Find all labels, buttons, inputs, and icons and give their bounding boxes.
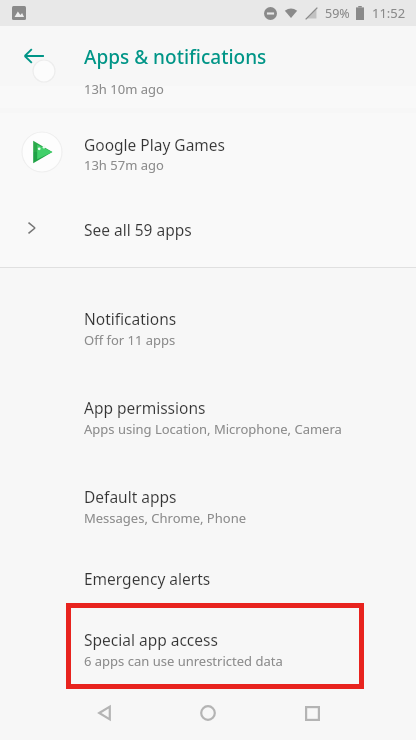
staticText: Special app access bbox=[84, 629, 218, 650]
button[interactable]: See all 59 apps bbox=[0, 189, 416, 267]
button[interactable]: Home bbox=[185, 690, 231, 736]
staticText: Notifications bbox=[84, 308, 177, 329]
staticText: Default apps bbox=[84, 486, 177, 507]
button[interactable]: Recent apps bbox=[289, 690, 335, 736]
button[interactable]: App permissions bbox=[0, 381, 416, 459]
button[interactable]: Emergency alerts bbox=[0, 553, 416, 613]
button[interactable]: Back bbox=[82, 690, 128, 736]
staticText: App permissions bbox=[84, 397, 206, 418]
button[interactable]: Special app access bbox=[0, 613, 416, 691]
button[interactable]: Default apps bbox=[0, 470, 416, 548]
staticText: 6 apps can use unrestricted data bbox=[84, 652, 283, 670]
staticText: Apps using Location, Microphone, Camera bbox=[84, 420, 342, 438]
staticText: 13h 10m ago bbox=[84, 80, 164, 98]
staticText: 13h 57m ago bbox=[84, 156, 164, 174]
staticText: Apps & notifications bbox=[84, 44, 267, 70]
button[interactable]: Notifications bbox=[0, 292, 416, 370]
staticText: 11:52 bbox=[372, 4, 406, 22]
staticText: Google Play Games bbox=[84, 134, 225, 155]
staticText: Emergency alerts bbox=[84, 568, 211, 589]
button[interactable]: Back bbox=[10, 32, 58, 80]
staticText: Messages, Chrome, Phone bbox=[84, 509, 246, 527]
button[interactable]: Google Play Games bbox=[0, 113, 416, 189]
button[interactable]: 13h 10m ago bbox=[0, 86, 416, 108]
staticText: See all 59 apps bbox=[84, 219, 192, 240]
staticText: Off for 11 apps bbox=[84, 331, 176, 349]
staticText: 59% bbox=[325, 5, 350, 22]
